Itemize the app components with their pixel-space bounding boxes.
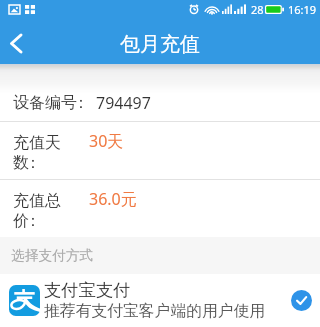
- staticText: 充值天: [13, 133, 61, 153]
- staticText: ：: [73, 93, 89, 113]
- button[interactable]: 设备编号: [0, 67, 320, 121]
- button[interactable]: 支付宝支付: [0, 274, 320, 327]
- staticText: 数: [13, 153, 29, 173]
- staticText: 充值总: [13, 191, 61, 211]
- staticText: ：: [25, 211, 41, 231]
- staticText: 推荐有支付宝客户端的用户使用: [44, 301, 266, 321]
- button[interactable]: 充值总: [0, 180, 320, 237]
- staticText: 16:19: [288, 2, 317, 17]
- staticText: 选择支付方式: [11, 247, 94, 264]
- button[interactable]: Alipay selected: [291, 290, 312, 311]
- staticText: 支付宝支付: [44, 279, 131, 301]
- staticText: 794497: [96, 92, 151, 114]
- button[interactable]: 充值天: [0, 122, 320, 179]
- button[interactable]: Back: [0, 18, 42, 64]
- staticText: 36.0元: [89, 188, 137, 210]
- staticText: 包月充值: [120, 32, 200, 57]
- staticText: 价: [13, 211, 29, 231]
- staticText: ：: [25, 153, 41, 173]
- staticText: 30天: [89, 130, 124, 152]
- staticText: 28: [251, 2, 264, 17]
- staticText: 设备编号: [13, 93, 77, 113]
